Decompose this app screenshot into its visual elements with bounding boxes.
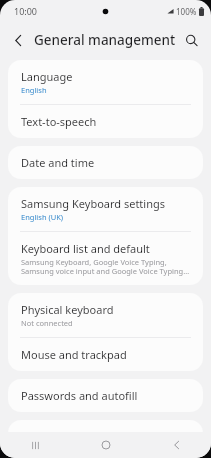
button[interactable]: Samsung Keyboard settings — [8, 187, 203, 231]
staticText: 10:00 — [14, 5, 38, 17]
staticText: Text-to-speech — [21, 114, 97, 129]
staticText: English — [21, 85, 47, 95]
button[interactable]: Physical keyboard — [8, 293, 203, 337]
staticText: 100% — [176, 6, 197, 17]
staticText: Keyboard list and default — [21, 241, 150, 256]
staticText: Physical keyboard — [21, 302, 114, 317]
button[interactable]: Keyboard list and default — [8, 232, 203, 285]
button[interactable]: Reset — [8, 420, 203, 453]
button[interactable]: Home — [86, 433, 126, 457]
staticText: Date and time — [21, 155, 95, 170]
staticText: Samsung Keyboard settings — [21, 196, 166, 211]
staticText: Samsung Keyboard, Google Voice Typing, S… — [21, 257, 190, 276]
staticText: Mouse and trackpad — [21, 347, 127, 362]
button[interactable]: Passwords and autofill — [8, 379, 203, 412]
button[interactable]: Mouse and trackpad — [8, 338, 203, 371]
staticText: Reset — [21, 429, 50, 444]
staticText: General management — [34, 31, 178, 49]
button[interactable]: Text-to-speech — [8, 105, 203, 138]
button[interactable]: Recent apps — [15, 433, 55, 457]
staticText: English (UK) — [21, 212, 64, 222]
button[interactable]: Date and time — [8, 146, 203, 179]
staticText: Not connected — [21, 318, 73, 328]
button[interactable]: Navigate up — [5, 27, 31, 53]
staticText: Passwords and autofill — [21, 388, 138, 403]
staticText: Language — [21, 69, 73, 84]
button[interactable]: Back — [156, 433, 196, 457]
button[interactable]: Search — [178, 27, 204, 53]
button[interactable]: Language — [8, 60, 203, 104]
